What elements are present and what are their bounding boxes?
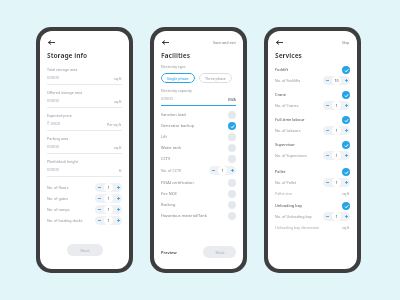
button[interactable]: Full-time labour [275, 114, 350, 125]
staticText: Unloading bay [275, 203, 342, 208]
staticText: No. of gates [47, 196, 95, 201]
button[interactable]: Checked [228, 122, 236, 130]
button[interactable]: Single phase [161, 73, 195, 83]
staticText: No. of floors [47, 185, 95, 190]
button[interactable]: 1 [323, 151, 350, 160]
staticText: 1 [107, 196, 110, 201]
staticText: Save and exit [213, 40, 236, 45]
button[interactable]: Back [161, 38, 170, 47]
button[interactable]: Unloading bay [275, 200, 350, 211]
button[interactable]: Unchecked [228, 144, 236, 152]
button[interactable]: Back [47, 38, 56, 47]
button[interactable]: No. of Unloading bay [275, 211, 350, 222]
button[interactable]: No. of loading docks [47, 215, 122, 226]
button[interactable]: 1 [323, 126, 350, 135]
button[interactable]: Skip [342, 40, 350, 45]
button[interactable]: Checked [342, 66, 350, 74]
button[interactable]: 1 [95, 183, 122, 192]
staticText: Parking area [47, 136, 69, 141]
button[interactable]: No. of Supervisors [275, 150, 350, 161]
button[interactable]: 1 [323, 101, 350, 110]
button[interactable]: No. of Labours [275, 125, 350, 136]
button[interactable]: Back [275, 38, 284, 47]
button[interactable]: Checked [342, 91, 350, 99]
button[interactable]: Fire NOC [161, 188, 236, 199]
staticText: Storage info [47, 51, 88, 60]
button[interactable]: FSSAI certification [161, 177, 236, 188]
button[interactable]: Unchecked [228, 111, 236, 119]
button[interactable]: Hazardous material/Tank [161, 210, 236, 221]
button[interactable]: Unchecked [228, 155, 236, 163]
button[interactable]: Racking [161, 199, 236, 210]
staticText: Next [215, 250, 225, 255]
button[interactable]: 1 [95, 205, 122, 214]
button[interactable]: Pallet [275, 166, 350, 177]
staticText: Lift [161, 134, 228, 139]
button[interactable]: Lift [161, 131, 236, 142]
staticText: Pallet size [275, 191, 342, 196]
staticText: Racking [161, 202, 228, 207]
staticText: Plinth/dock height [47, 159, 78, 164]
button[interactable]: Unchecked [228, 212, 236, 220]
button[interactable]: No. of Forklifts [275, 75, 350, 86]
button[interactable]: Unchecked [228, 190, 236, 198]
staticText: 10 [334, 78, 339, 83]
button[interactable]: Next [67, 244, 103, 256]
button[interactable]: Generator backup [161, 120, 236, 131]
button[interactable]: 1 [95, 194, 122, 203]
staticText: Hazardous material/Tank [161, 213, 228, 218]
button[interactable]: Unchecked [228, 201, 236, 209]
button[interactable]: 1 [323, 178, 350, 187]
staticText: 1 [107, 207, 110, 212]
button[interactable]: 1 [323, 212, 350, 221]
button[interactable]: Unchecked [228, 179, 236, 187]
button[interactable]: Checked [342, 141, 350, 149]
button[interactable]: Forklift [275, 64, 350, 75]
staticText: No. of Pallet [275, 180, 323, 185]
button[interactable]: Preview [161, 250, 177, 255]
button[interactable]: Water tank [161, 142, 236, 153]
button[interactable]: No. of floors [47, 182, 122, 193]
button[interactable]: Pallet size [275, 188, 350, 198]
button[interactable]: 1 [209, 166, 236, 175]
button[interactable]: Checked [342, 116, 350, 124]
button[interactable]: Unchecked [228, 133, 236, 141]
staticText: Total storage area [47, 67, 78, 72]
staticText: No. of Unloading bay [275, 214, 323, 219]
button[interactable]: No. of Cranes [275, 100, 350, 111]
button[interactable]: Checked [342, 202, 350, 210]
staticText: Offered storage area [47, 90, 83, 95]
staticText: KWA [228, 97, 236, 102]
staticText: Electricity capacity [161, 88, 192, 93]
button[interactable]: Three phase [199, 73, 232, 83]
button[interactable]: No. of Pallet [275, 177, 350, 188]
staticText: sq.ft [114, 145, 122, 150]
button[interactable]: CCTV [161, 153, 236, 164]
staticText: ₹ 0000 [47, 121, 107, 127]
staticText: FSSAI certification [161, 180, 228, 185]
button[interactable]: Save and exit [213, 40, 236, 45]
staticText: Preview [161, 250, 177, 255]
button[interactable]: Next [203, 246, 236, 258]
staticText: 1 [335, 153, 338, 158]
button[interactable]: No. of ramps [47, 204, 122, 215]
button[interactable]: No. of gates [47, 193, 122, 204]
staticText: CCTV [161, 156, 228, 161]
button[interactable]: Unloading bay dimension [275, 222, 350, 232]
button[interactable]: 1 [95, 216, 122, 225]
button[interactable]: Sanction load [161, 109, 236, 120]
staticText: 1 [335, 180, 338, 185]
staticText: 1 [335, 128, 338, 133]
staticText: No. of ramps [47, 207, 95, 212]
staticText: 1 [107, 218, 110, 223]
button[interactable]: No. of CCTV [161, 165, 236, 176]
button[interactable]: Crane [275, 89, 350, 100]
staticText: Electricity type [161, 64, 186, 69]
button[interactable]: 10 [323, 76, 350, 85]
staticText: Services [275, 51, 302, 60]
button[interactable]: Checked [342, 168, 350, 176]
staticText: Single phase [167, 76, 189, 81]
staticText: Fire NOC [161, 191, 228, 196]
staticText: ft [119, 168, 122, 173]
button[interactable]: Supervisor [275, 139, 350, 150]
